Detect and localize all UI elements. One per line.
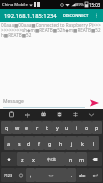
button[interactable]: , <box>26 168 35 182</box>
staticText: j <box>71 140 73 147</box>
staticText: 89% <box>76 2 84 7</box>
staticText: o <box>85 124 89 131</box>
button[interactable]: Translate <box>55 110 64 119</box>
staticText: 中/英 <box>47 157 57 162</box>
button[interactable]: Space <box>35 168 67 182</box>
button[interactable]: z <box>17 152 28 166</box>
button[interactable]: Stickers <box>39 110 48 119</box>
button[interactable]: r <box>32 121 42 134</box>
staticText: Message <box>3 98 24 105</box>
button[interactable]: DISCONNECT <box>61 10 91 21</box>
button[interactable]: f <box>34 136 44 150</box>
staticText: f <box>38 140 40 147</box>
staticText: 中 <box>25 112 30 118</box>
button[interactable]: n <box>65 152 76 166</box>
button[interactable]: s <box>14 136 24 150</box>
staticText: 192.168.1.185:1234 <box>4 12 57 20</box>
button[interactable]: . <box>67 168 76 182</box>
button[interactable]: j <box>66 136 77 150</box>
staticText: , <box>30 172 32 179</box>
button[interactable]: x <box>28 152 39 166</box>
staticText: q <box>5 124 9 131</box>
staticText: e <box>25 124 29 131</box>
button[interactable]: Message <box>3 98 85 108</box>
button[interactable]: Enter <box>88 168 102 182</box>
staticText: i <box>76 124 78 131</box>
button[interactable]: Shift <box>1 152 17 166</box>
staticText: m <box>79 156 85 163</box>
button[interactable]: a <box>4 136 14 150</box>
staticText: x <box>32 156 35 163</box>
button[interactable]: Hide keyboard <box>87 110 96 119</box>
staticText: . <box>71 172 73 179</box>
button[interactable]: w <box>12 121 22 134</box>
staticText: g <box>48 140 52 147</box>
button[interactable]: i <box>72 121 82 134</box>
staticText: k <box>81 140 84 147</box>
button[interactable]: l <box>88 136 99 150</box>
staticText: 00aaa■00aaa■Connected to Raspberry Pi>>>… <box>1 22 102 39</box>
button[interactable]: abc <box>76 168 88 182</box>
staticText: abc <box>79 173 86 178</box>
staticText: n <box>69 156 73 163</box>
button[interactable]: d <box>24 136 34 150</box>
staticText: s <box>18 140 21 147</box>
button[interactable]: Settings <box>71 110 80 119</box>
button[interactable]: q <box>1 121 12 134</box>
staticText: h <box>59 140 63 147</box>
staticText: China Mobile <box>2 2 28 8</box>
button[interactable]: More options <box>91 10 102 21</box>
staticText: t <box>46 124 48 131</box>
button[interactable]: y <box>52 121 62 134</box>
staticText: d <box>27 140 31 147</box>
staticText: y <box>56 124 59 131</box>
staticText: w <box>15 124 20 131</box>
button[interactable]: t <box>42 121 52 134</box>
staticText: l <box>93 140 95 147</box>
button[interactable]: Clipboard <box>7 110 16 119</box>
staticText: ?123 <box>4 173 13 178</box>
button[interactable]: h <box>55 136 66 150</box>
button[interactable]: g <box>44 136 55 150</box>
button[interactable]: k <box>77 136 88 150</box>
button[interactable]: Switch language <box>23 110 32 119</box>
button[interactable]: o <box>82 121 92 134</box>
staticText: a <box>7 140 11 147</box>
staticText: r <box>36 124 39 131</box>
staticText: z <box>21 156 24 163</box>
staticText: u <box>65 124 69 131</box>
staticText: DISCONNECT <box>63 13 89 18</box>
button[interactable]: Emoji <box>15 168 26 182</box>
button[interactable]: Send <box>88 96 101 109</box>
button[interactable]: u <box>62 121 72 134</box>
staticText: p <box>95 124 99 131</box>
button[interactable]: ?123 <box>1 168 15 182</box>
button[interactable]: m <box>76 152 87 166</box>
button[interactable]: p <box>92 121 102 134</box>
staticText: 15:03 <box>89 2 101 8</box>
button[interactable]: e <box>22 121 32 134</box>
button[interactable]: Backspace <box>87 152 102 166</box>
button[interactable]: 中/英 <box>39 152 65 166</box>
